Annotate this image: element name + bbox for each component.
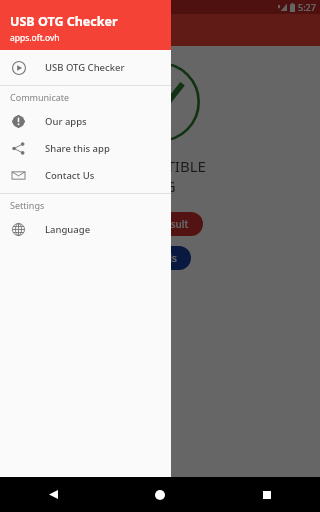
button[interactable] [0, 0, 320, 477]
staticText: USB OTG Checker [10, 13, 118, 30]
button[interactable]: Details [130, 246, 191, 270]
staticText: COMPATIBLE [115, 156, 206, 176]
button[interactable]: USB OTG Checker [0, 54, 171, 81]
button[interactable]: Share result [117, 212, 203, 236]
staticText: Share result [131, 217, 189, 231]
staticText: Details [144, 251, 177, 265]
staticText: OTG [145, 176, 176, 196]
staticText: 5:27 [298, 1, 316, 13]
button[interactable]: Contact Us [0, 162, 171, 189]
staticText: USB OTG Checker [45, 61, 125, 74]
button[interactable]: Share this app [0, 135, 171, 162]
staticText: Communicate [10, 91, 70, 103]
staticText: apps.oft.ovh [10, 32, 60, 44]
staticText: Settings [10, 199, 45, 211]
staticText: Share this app [45, 142, 110, 155]
button[interactable]: Back [0, 477, 106, 512]
button[interactable]: Home [106, 477, 213, 512]
staticText: Our apps [45, 115, 87, 128]
button[interactable]: Our apps [0, 108, 171, 135]
button[interactable]: Recents [213, 477, 320, 512]
button[interactable]: Language [0, 216, 171, 243]
staticText: Language [45, 223, 91, 236]
staticText: Contact Us [45, 169, 95, 182]
button[interactable]: USB OTG Checker [0, 0, 171, 50]
